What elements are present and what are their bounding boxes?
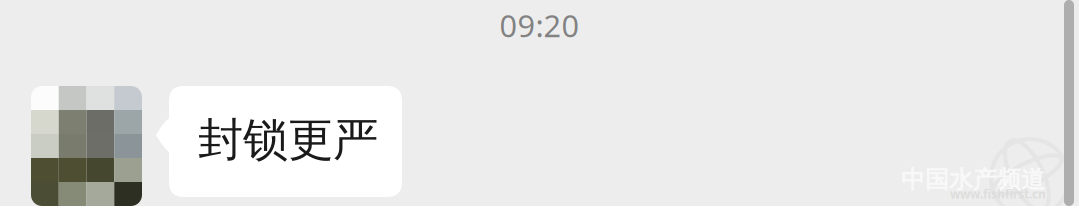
staticText: www.fishfirst.cn <box>950 186 1046 202</box>
staticText: 封锁更严 <box>198 112 378 168</box>
button[interactable]: 封锁更严 <box>156 86 402 197</box>
staticText: 中国水产频道 <box>901 165 1045 194</box>
button[interactable]: Sender avatar <box>31 86 142 206</box>
staticText: 09:20 <box>499 5 579 46</box>
